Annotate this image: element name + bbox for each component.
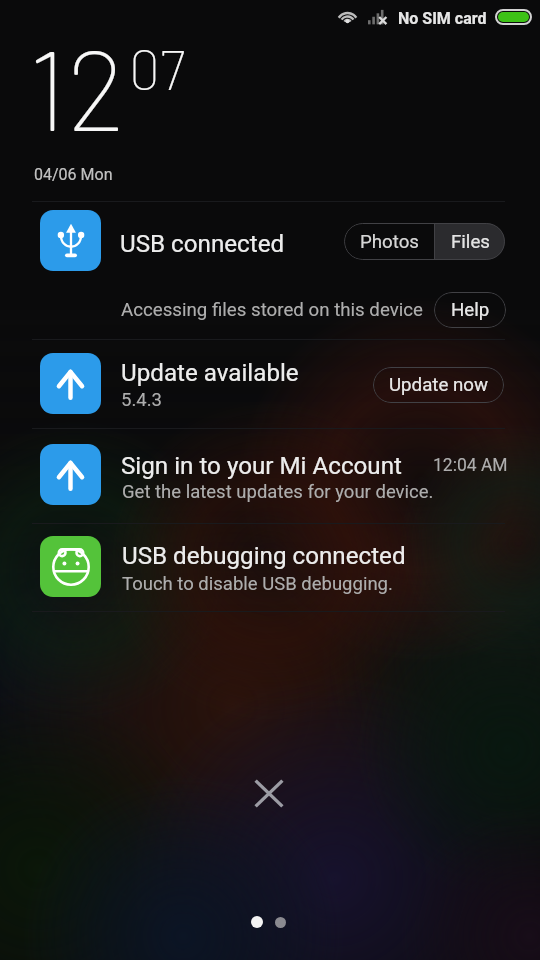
- button[interactable]: Clear all notifications: [245, 769, 293, 817]
- button[interactable]: [0, 522, 540, 612]
- button[interactable]: Files: [435, 223, 505, 260]
- staticText: Update now: [389, 374, 488, 396]
- staticText: 12: [28, 19, 126, 153]
- staticText: Sign in to your Mi Account: [121, 452, 402, 480]
- staticText: Get the latest updates for your device.: [122, 481, 434, 503]
- button[interactable]: [0, 197, 540, 339]
- button[interactable]: [0, 431, 540, 521]
- staticText: 12:04 AM: [433, 455, 508, 476]
- staticText: Files: [451, 231, 490, 253]
- staticText: 5.4.3: [121, 389, 162, 411]
- staticText: Photos: [360, 231, 419, 253]
- staticText: 04/06 Mon: [34, 165, 113, 184]
- staticText: Update available: [121, 359, 299, 387]
- button[interactable]: Update now: [373, 367, 504, 403]
- staticText: Help: [451, 299, 490, 321]
- staticText: No SIM card: [398, 9, 487, 28]
- button[interactable]: Photos: [344, 223, 434, 260]
- staticText: USB connected: [120, 230, 285, 258]
- button[interactable]: [0, 340, 540, 430]
- staticText: Touch to disable USB debugging.: [122, 573, 393, 595]
- staticText: USB debugging connected: [122, 542, 406, 570]
- button[interactable]: Help: [434, 292, 506, 328]
- staticText: Accessing files stored on this device: [121, 299, 423, 321]
- staticText: 07: [129, 35, 186, 101]
